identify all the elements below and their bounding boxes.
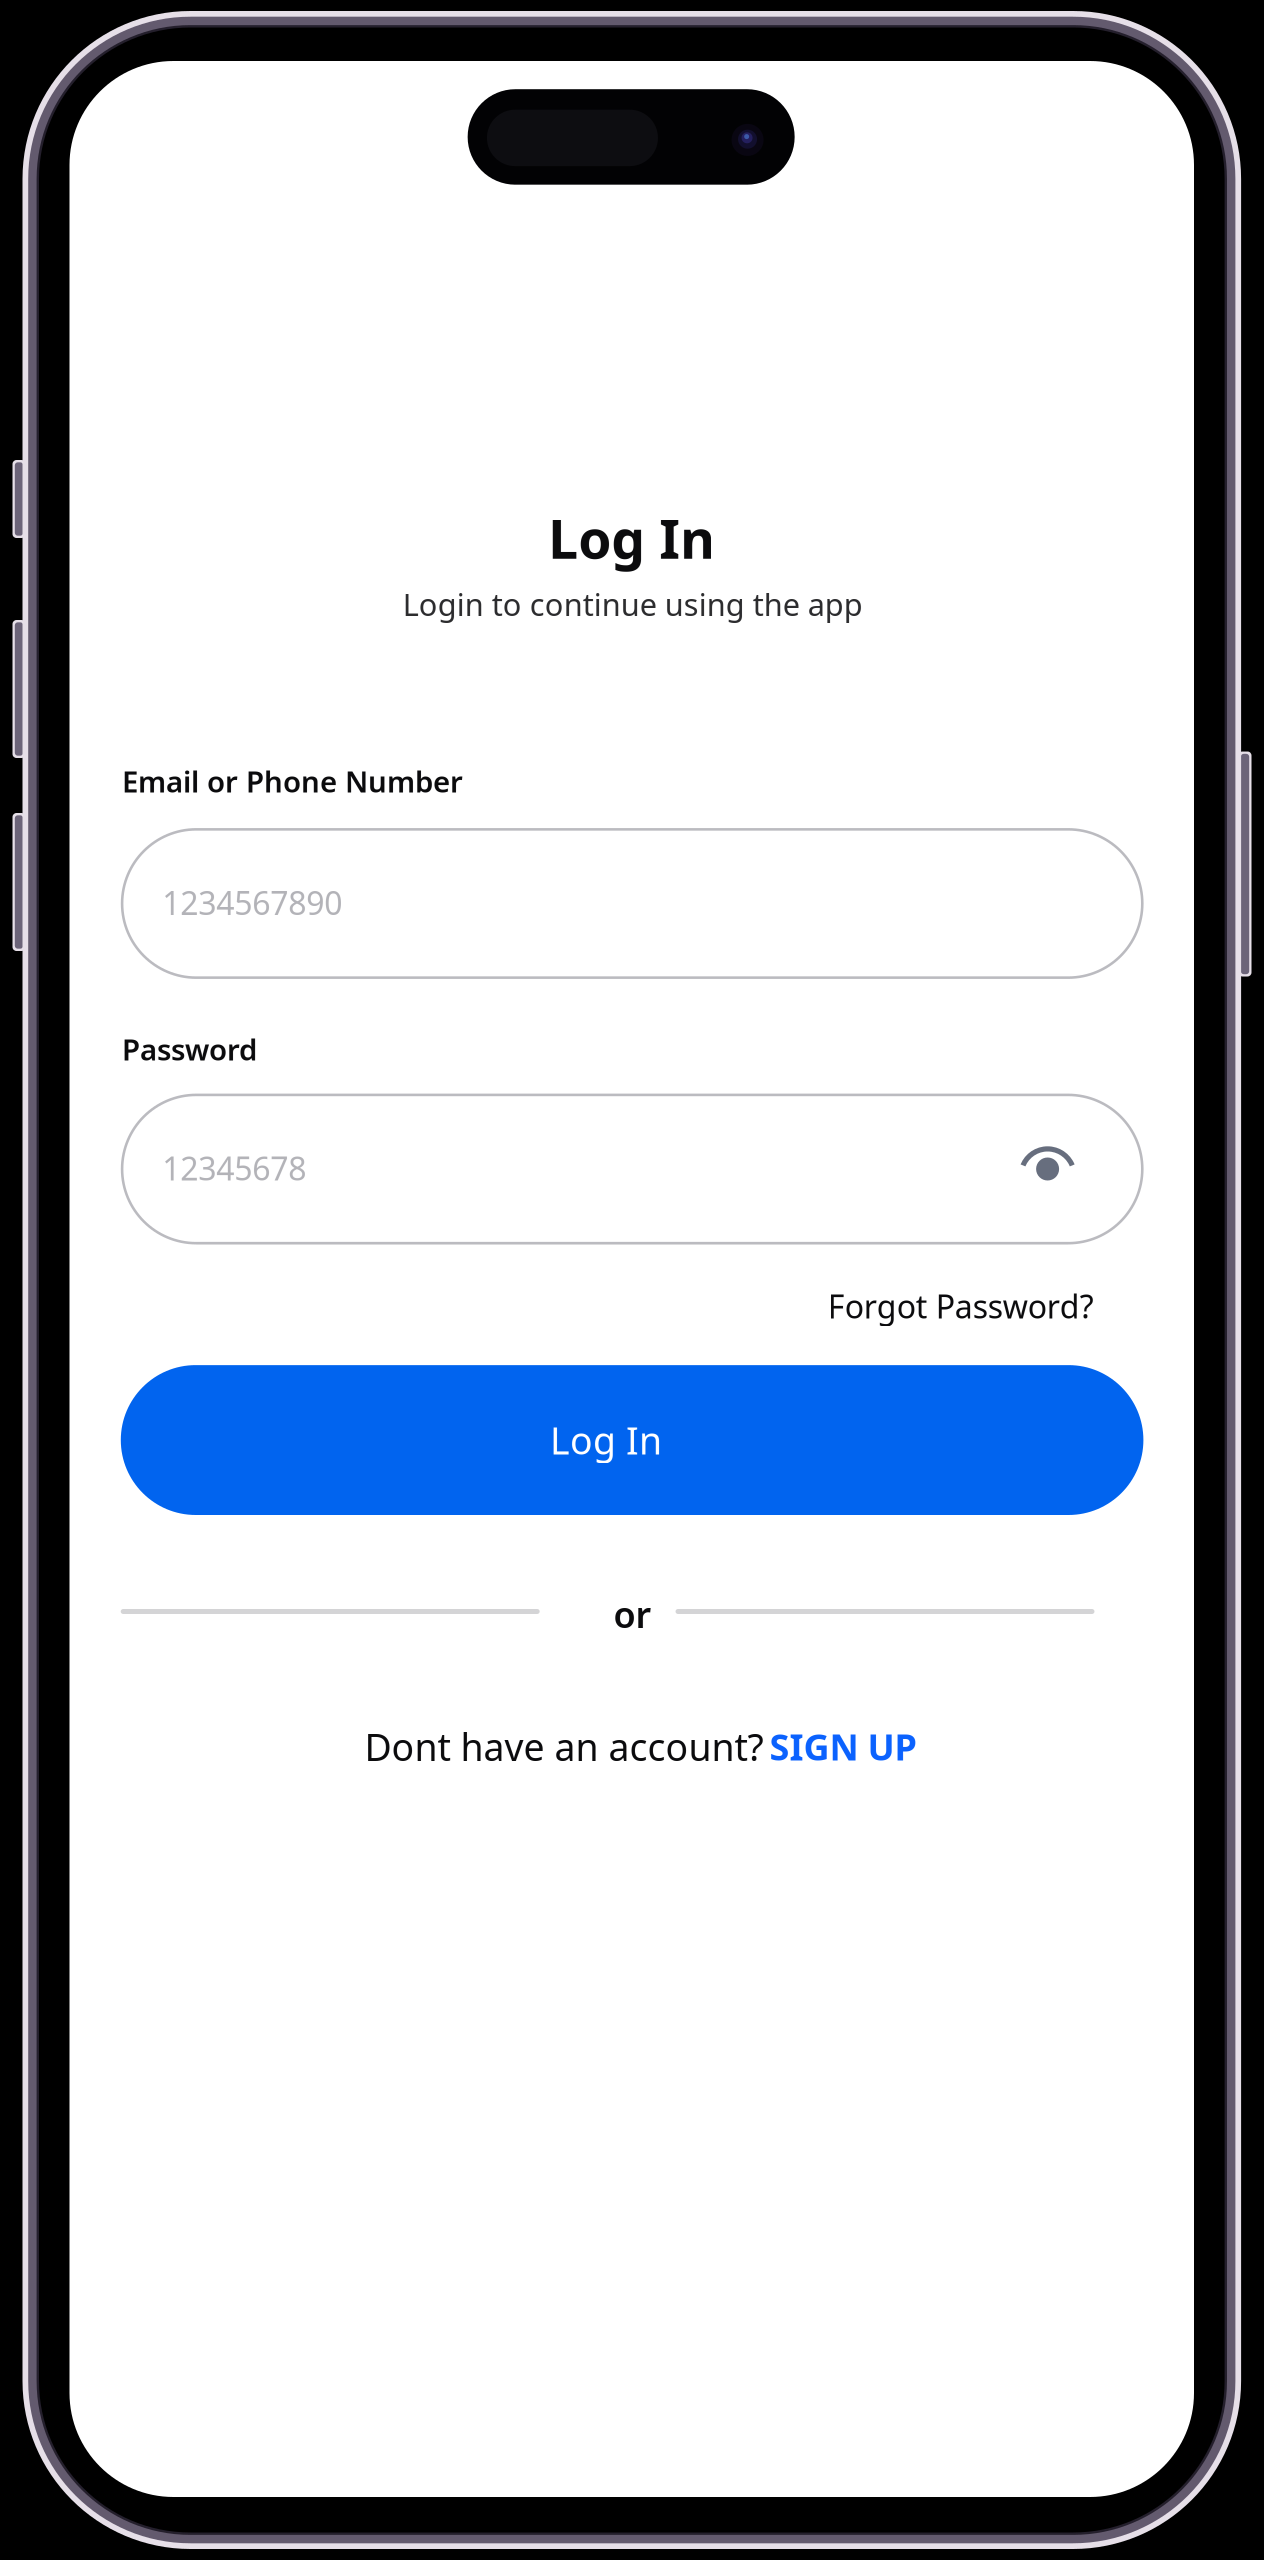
button[interactable]: Forgot Password?: [634, 1278, 1094, 1334]
staticText: 1234567890: [162, 881, 342, 924]
staticText: Password: [122, 1029, 257, 1068]
staticText: Email or Phone Number: [122, 761, 463, 800]
staticText: Forgot Password?: [828, 1285, 1094, 1327]
button[interactable]: Log In: [121, 1365, 1143, 1515]
staticText: Log In: [548, 503, 715, 573]
button[interactable]: Show password: [1013, 1135, 1083, 1191]
staticText: SIGN UP: [769, 1723, 916, 1770]
staticText: Login to continue using the app: [403, 584, 863, 624]
button[interactable]: Dont have an account?: [364, 1716, 916, 1776]
staticText: Dont have an account?: [364, 1722, 763, 1771]
staticText: 12345678: [162, 1147, 306, 1189]
staticText: Log In: [550, 1415, 662, 1465]
staticText: or: [613, 1590, 651, 1638]
